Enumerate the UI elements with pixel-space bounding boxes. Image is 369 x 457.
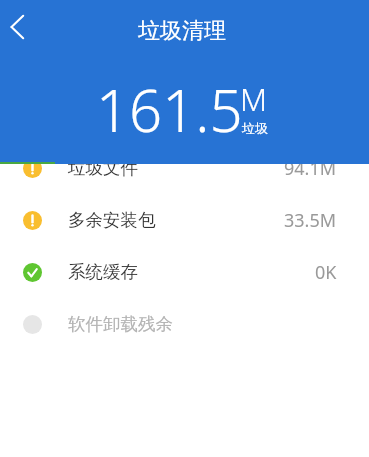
- staticText: 软件卸载残余: [68, 313, 173, 335]
- button[interactable]: 软件卸载残余: [0, 298, 369, 350]
- staticText: 垃圾文件: [68, 157, 138, 179]
- button[interactable]: 系统缓存: [0, 246, 369, 298]
- staticText: 94.1M: [284, 156, 337, 181]
- staticText: 垃圾清理: [138, 17, 226, 45]
- staticText: 33.5M: [284, 208, 337, 233]
- staticText: 系统缓存: [68, 261, 138, 283]
- button[interactable]: 多余安装包: [0, 194, 369, 246]
- staticText: M: [240, 78, 268, 120]
- staticText: 161.5: [96, 70, 243, 149]
- staticText: 0K: [315, 260, 337, 285]
- staticText: 多余安装包: [68, 209, 156, 231]
- button[interactable]: 垃圾文件: [0, 142, 369, 194]
- button[interactable]: Back: [0, 4, 41, 50]
- staticText: 垃圾: [242, 120, 268, 136]
